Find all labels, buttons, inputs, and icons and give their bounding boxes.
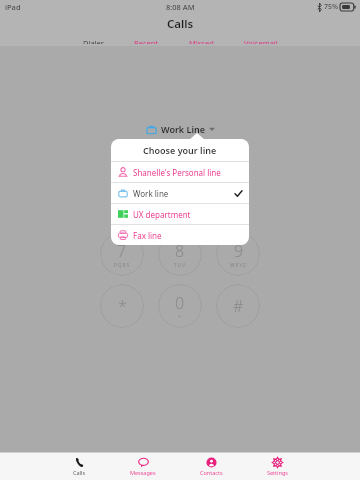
- staticText: Voicemail: [244, 38, 278, 44]
- button[interactable]: Dialer: [81, 36, 106, 46]
- staticText: PQRS: [114, 262, 130, 269]
- button[interactable]: 9: [216, 232, 260, 276]
- staticText: Settings: [267, 469, 288, 476]
- button[interactable]: Settings: [263, 456, 292, 477]
- button[interactable]: Calls: [69, 456, 90, 477]
- button[interactable]: Work line: [111, 183, 249, 203]
- staticText: 9: [234, 240, 244, 262]
- staticText: 0: [175, 292, 185, 314]
- staticText: #: [233, 295, 244, 317]
- button[interactable]: Fax line: [111, 225, 249, 245]
- button[interactable]: UX department: [111, 204, 249, 224]
- staticText: Recent: [134, 38, 159, 44]
- staticText: 8: [175, 240, 185, 262]
- staticText: *: [118, 295, 127, 317]
- button[interactable]: Messages: [126, 456, 160, 477]
- button[interactable]: #: [216, 284, 260, 328]
- staticText: Choose your line: [143, 144, 217, 156]
- staticText: Messages: [130, 469, 156, 476]
- staticText: Contacts: [200, 469, 223, 476]
- button[interactable]: Contacts: [196, 456, 227, 477]
- staticText: Work Line: [161, 123, 205, 135]
- staticText: Calls: [167, 16, 194, 32]
- button[interactable]: Missed: [187, 36, 216, 46]
- staticText: UX department: [133, 209, 242, 220]
- staticText: 7: [117, 240, 127, 262]
- button[interactable]: *: [100, 284, 144, 328]
- staticText: WXYZ: [230, 262, 247, 269]
- staticText: Missed: [189, 38, 214, 44]
- staticText: Fax line: [133, 230, 242, 241]
- staticText: iPad: [5, 2, 21, 12]
- button[interactable]: 7: [100, 232, 144, 276]
- staticText: Shanelle's Personal line: [133, 167, 242, 178]
- staticText: TUV: [174, 262, 186, 269]
- staticText: Work line: [133, 188, 235, 199]
- button[interactable]: 8: [158, 232, 202, 276]
- staticText: Calls: [73, 469, 86, 476]
- button[interactable]: 0: [158, 284, 202, 328]
- button[interactable]: Recent: [132, 36, 161, 46]
- staticText: +: [178, 314, 182, 321]
- button[interactable]: Voicemail: [242, 36, 280, 46]
- staticText: Dialer: [83, 38, 104, 44]
- staticText: 75%: [324, 2, 338, 12]
- button[interactable]: Shanelle's Personal line: [111, 162, 249, 182]
- staticText: 8:08 AM: [166, 2, 195, 12]
- button[interactable]: Work Line: [143, 121, 218, 137]
